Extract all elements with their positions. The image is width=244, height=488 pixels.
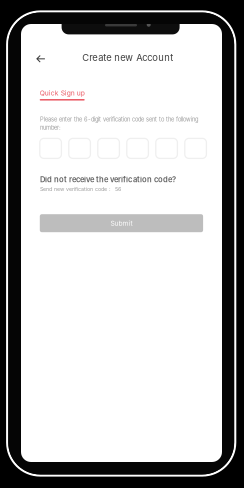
- button[interactable]: Submit: [40, 214, 203, 232]
- staticText: Submit: [110, 219, 132, 227]
- staticText: number:: [40, 124, 61, 131]
- staticText: Create new Account: [82, 52, 173, 63]
- button[interactable]: Back: [31, 49, 51, 69]
- staticText: Send new verification code : 56: [40, 186, 121, 192]
- staticText: Please enter the 6-digit verification co…: [40, 116, 198, 123]
- staticText: Quick Sign up: [40, 89, 85, 97]
- button[interactable]: Quick Sign up: [40, 89, 85, 101]
- staticText: Did not receive the verification code?: [40, 175, 176, 184]
